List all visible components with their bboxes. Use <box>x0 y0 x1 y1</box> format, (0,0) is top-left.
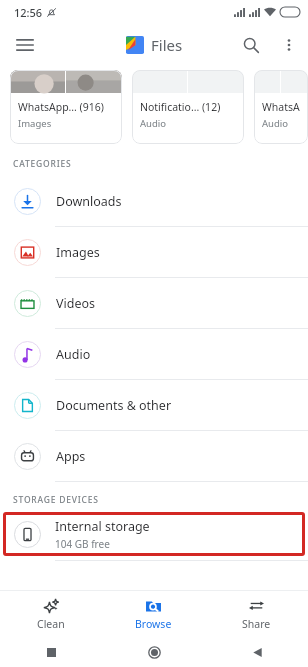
staticText: Images <box>18 117 52 130</box>
button[interactable]: Internal storage <box>3 512 305 556</box>
button[interactable]: WhatsApp… (916) <box>10 70 122 144</box>
staticText: Notificatio… (12) <box>140 100 221 114</box>
staticText: WhatsApp… (1 <box>262 100 300 114</box>
button[interactable]: Videos <box>0 278 308 328</box>
staticText: Downloads <box>56 193 122 210</box>
button[interactable]: More options <box>270 26 308 64</box>
button[interactable]: Recent apps <box>38 639 64 665</box>
button[interactable]: Images <box>0 227 308 277</box>
button[interactable]: Open navigation menu <box>6 26 44 64</box>
staticText: 104 GB free <box>55 537 110 551</box>
staticText: Audio <box>140 117 166 130</box>
staticText: 12:56 <box>14 5 43 20</box>
staticText: Share <box>242 617 271 631</box>
staticText: Documents & other <box>56 397 172 414</box>
staticText: STORAGE DEVICES <box>13 494 99 506</box>
staticText: Browse <box>135 617 172 631</box>
staticText: Audio <box>262 117 288 130</box>
staticText: Clean <box>37 617 65 631</box>
staticText: WhatsApp… (916) <box>18 100 104 114</box>
button[interactable]: Back <box>244 639 270 665</box>
staticText: Files <box>151 35 183 55</box>
button[interactable]: Notificatio… (12) <box>132 70 244 144</box>
button[interactable]: WhatsApp… (1 <box>254 70 308 144</box>
staticText: Videos <box>56 295 96 312</box>
button[interactable]: Search <box>232 26 270 64</box>
staticText: Apps <box>56 448 86 465</box>
button[interactable]: Clean <box>0 591 102 637</box>
button[interactable]: Share <box>205 591 308 637</box>
staticText: CATEGORIES <box>13 158 72 170</box>
staticText: Internal storage <box>55 518 150 535</box>
button[interactable]: Home <box>141 639 167 665</box>
button[interactable]: Apps <box>0 431 308 481</box>
button[interactable]: Downloads <box>0 176 308 226</box>
button[interactable]: Documents & other <box>0 380 308 430</box>
staticText: Images <box>56 244 100 261</box>
button[interactable]: Audio <box>0 329 308 379</box>
button[interactable]: Browse <box>102 591 205 637</box>
staticText: Audio <box>56 346 91 363</box>
